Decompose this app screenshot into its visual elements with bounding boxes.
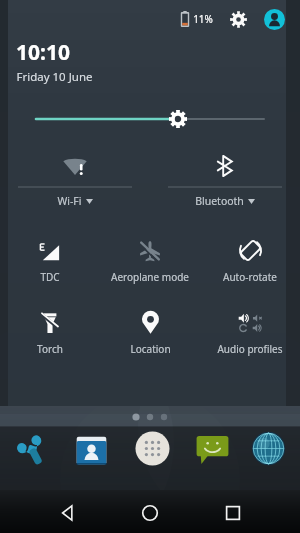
staticText: Aeroplane mode <box>111 270 189 284</box>
button[interactable]: Back <box>56 502 78 524</box>
staticText: Torch <box>37 342 63 356</box>
staticText: 10:10 <box>16 38 70 67</box>
staticText: Bluetooth <box>195 194 244 208</box>
button[interactable]: 10:10 <box>16 38 70 67</box>
button[interactable]: Torch <box>0 306 100 364</box>
staticText: Wi-Fi <box>57 194 82 208</box>
button[interactable]: Home <box>139 502 161 524</box>
button[interactable]: Wi-Fi <box>18 146 132 208</box>
button[interactable]: Browser <box>250 430 287 467</box>
staticText: Auto-rotate <box>223 270 277 284</box>
staticText: TDC <box>40 270 60 284</box>
staticText: 11% <box>193 12 213 26</box>
button[interactable]: Location <box>100 306 200 364</box>
button[interactable]: TDC <box>0 234 100 292</box>
staticText: Friday 10 June <box>16 69 93 85</box>
button[interactable]: Phone <box>14 432 51 469</box>
button[interactable]: Brightness <box>0 104 300 134</box>
button[interactable]: Aeroplane mode <box>100 234 200 292</box>
button[interactable]: Auto-rotate <box>200 234 300 292</box>
button[interactable]: Bluetooth <box>168 146 282 208</box>
button[interactable]: Apps <box>134 430 171 467</box>
staticText: Location <box>130 342 171 356</box>
button[interactable]: User profile <box>262 7 286 31</box>
staticText: Audio profiles <box>217 342 283 356</box>
button[interactable]: Recents <box>222 502 244 524</box>
button[interactable]: Messaging <box>194 430 231 467</box>
button[interactable]: Contacts <box>73 432 110 469</box>
button[interactable]: Audio profiles <box>200 306 300 364</box>
button[interactable]: Settings <box>227 8 249 30</box>
